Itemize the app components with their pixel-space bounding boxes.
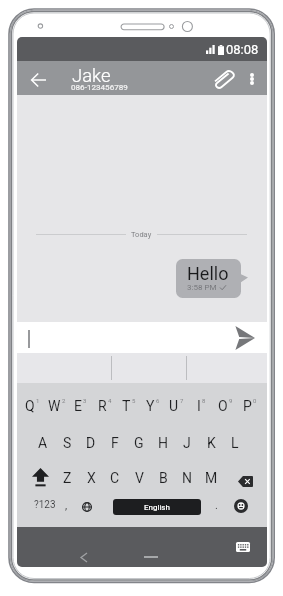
staticText: 3:58 PM: [187, 283, 217, 292]
staticText: K: [207, 435, 216, 451]
staticText: 5: [132, 397, 136, 404]
staticText: M: [205, 470, 218, 486]
staticText: O: [218, 398, 228, 414]
button[interactable]: ,: [58, 492, 74, 518]
button[interactable]: [184, 353, 267, 384]
button[interactable]: K: [199, 428, 223, 458]
staticText: 08:08: [226, 42, 259, 57]
staticText: 2: [62, 397, 66, 404]
button[interactable]: [17, 353, 101, 384]
staticText: I: [197, 398, 201, 414]
staticText: Today: [131, 230, 152, 239]
staticText: J: [183, 435, 191, 451]
staticText: T: [122, 398, 131, 414]
button[interactable]: I: [189, 391, 213, 421]
button[interactable]: Send: [225, 323, 265, 353]
button[interactable]: V: [127, 463, 151, 493]
staticText: English: [144, 503, 170, 512]
staticText: 8: [202, 397, 206, 404]
staticText: E: [74, 398, 82, 414]
staticText: Q: [25, 398, 35, 414]
button[interactable]: Backspace: [231, 468, 259, 494]
button[interactable]: J: [175, 428, 199, 458]
button[interactable]: E: [68, 391, 92, 421]
button[interactable]: L: [223, 428, 247, 458]
staticText: B: [159, 470, 168, 486]
button[interactable]: Y: [140, 391, 164, 421]
staticText: 6: [156, 397, 160, 404]
button[interactable]: Shift: [26, 462, 54, 492]
button[interactable]: Attach: [210, 66, 236, 92]
button[interactable]: G: [127, 428, 151, 458]
staticText: Jake: [72, 65, 111, 87]
button[interactable]: B: [151, 463, 175, 493]
staticText: ,: [65, 499, 68, 512]
button[interactable]: M: [199, 463, 223, 493]
staticText: Y: [146, 398, 155, 414]
staticText: 1: [36, 397, 40, 404]
staticText: F: [111, 435, 119, 451]
button[interactable]: Hide keyboard: [233, 537, 253, 557]
staticText: X: [87, 470, 96, 486]
staticText: Z: [63, 470, 72, 486]
button[interactable]: D: [79, 428, 103, 458]
button[interactable]: Back: [73, 546, 95, 567]
staticText: R: [98, 398, 107, 414]
button[interactable]: W: [44, 391, 68, 421]
staticText: S: [63, 435, 72, 451]
staticText: 0: [253, 397, 257, 404]
button[interactable]: Z: [55, 463, 79, 493]
button[interactable]: [101, 353, 184, 384]
staticText: C: [110, 470, 120, 486]
staticText: 4: [108, 397, 112, 404]
staticText: D: [86, 435, 96, 451]
button[interactable]: C: [103, 463, 127, 493]
button[interactable]: Q: [20, 391, 44, 421]
staticText: 3: [83, 397, 87, 404]
staticText: N: [182, 470, 192, 486]
button[interactable]: ?123: [29, 492, 61, 518]
staticText: .: [215, 499, 218, 512]
button[interactable]: N: [175, 463, 199, 493]
button[interactable]: Hello: [176, 259, 241, 298]
staticText: G: [134, 435, 144, 451]
button[interactable]: X: [79, 463, 103, 493]
staticText: A: [38, 435, 48, 451]
button[interactable]: Change language: [77, 494, 97, 520]
button[interactable]: English: [113, 499, 201, 515]
staticText: ?123: [34, 499, 56, 511]
button[interactable]: P: [237, 391, 261, 421]
staticText: Hello: [187, 263, 229, 284]
button[interactable]: Home: [137, 548, 165, 566]
button[interactable]: S: [55, 428, 79, 458]
button[interactable]: H: [151, 428, 175, 458]
button[interactable]: T: [116, 391, 140, 421]
button[interactable]: R: [92, 391, 116, 421]
button[interactable]: U: [164, 391, 188, 421]
staticText: 9: [229, 397, 233, 404]
staticText: 086-123456789: [71, 82, 128, 91]
staticText: V: [135, 470, 144, 486]
staticText: W: [48, 398, 61, 414]
button[interactable]: Back: [25, 67, 51, 93]
button[interactable]: F: [103, 428, 127, 458]
staticText: 7: [180, 397, 184, 404]
staticText: P: [243, 398, 252, 414]
button[interactable]: O: [213, 391, 237, 421]
button[interactable]: Emoji: [229, 493, 253, 519]
staticText: L: [231, 435, 239, 451]
button[interactable]: A: [31, 428, 55, 458]
staticText: U: [169, 398, 179, 414]
staticText: H: [158, 435, 168, 451]
button[interactable]: .: [208, 492, 224, 518]
button[interactable]: More options: [241, 68, 263, 90]
